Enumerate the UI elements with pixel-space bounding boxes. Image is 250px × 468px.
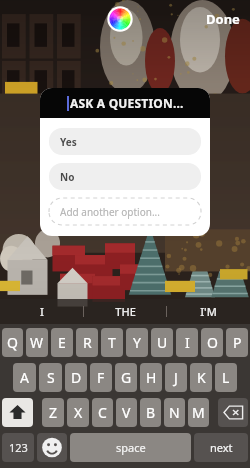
staticText: B — [146, 403, 156, 422]
staticText: V — [122, 403, 131, 422]
staticText: U — [157, 333, 168, 352]
staticText: O — [207, 333, 218, 352]
button[interactable]: Emoji — [37, 433, 67, 462]
staticText: M — [192, 403, 205, 422]
button[interactable]: R — [76, 328, 98, 357]
staticText: Yes — [60, 135, 77, 149]
staticText: No — [60, 170, 75, 184]
staticText: E — [58, 333, 66, 352]
staticText: I — [185, 333, 190, 352]
staticText: A — [20, 368, 29, 387]
button[interactable]: M — [188, 398, 209, 427]
staticText: next — [210, 440, 233, 455]
staticText: Z — [49, 403, 58, 422]
staticText: H — [146, 368, 157, 387]
staticText: THE — [115, 304, 136, 319]
staticText: P — [233, 333, 242, 352]
button[interactable]: THE — [84, 299, 167, 324]
staticText: J — [174, 368, 178, 387]
button[interactable]: P — [226, 328, 248, 357]
button[interactable]: F — [90, 363, 112, 392]
staticText: 123 — [9, 440, 28, 455]
staticText: I — [40, 304, 44, 319]
button[interactable]: Shift — [2, 398, 33, 427]
button[interactable]: 123 — [2, 433, 34, 462]
button[interactable]: No — [49, 163, 201, 190]
staticText: L — [222, 368, 230, 387]
button[interactable]: G — [115, 363, 137, 392]
button[interactable]: C — [92, 398, 113, 427]
button[interactable]: O — [201, 328, 223, 357]
staticText: T — [108, 333, 116, 352]
button[interactable]: V — [116, 398, 137, 427]
button[interactable]: X — [67, 398, 89, 427]
staticText: X — [74, 403, 83, 422]
button[interactable]: U — [151, 328, 173, 357]
button[interactable]: T — [101, 328, 123, 357]
staticText: C — [98, 403, 107, 422]
button[interactable]: I — [0, 299, 84, 324]
staticText: W — [30, 333, 44, 352]
button[interactable]: Z — [42, 398, 64, 427]
button[interactable]: N — [164, 398, 185, 427]
button[interactable]: Yes — [49, 128, 201, 155]
button[interactable]: ASK A QUESTION... — [40, 88, 210, 118]
button[interactable]: A — [13, 363, 36, 392]
staticText: R — [83, 333, 92, 352]
staticText: Add another option... — [60, 205, 160, 219]
staticText: space — [116, 440, 146, 455]
button[interactable]: E — [51, 328, 73, 357]
button[interactable]: Done — [196, 6, 250, 32]
staticText: Q — [7, 333, 18, 352]
staticText: G — [121, 368, 132, 387]
button[interactable]: Backspace — [218, 398, 248, 427]
button[interactable]: Q — [2, 328, 23, 357]
button[interactable]: J — [165, 363, 187, 392]
staticText: F — [97, 368, 105, 387]
staticText: Done — [206, 10, 240, 28]
button[interactable]: Color picker — [107, 6, 133, 32]
staticText: K — [197, 368, 206, 387]
staticText: Y — [133, 333, 141, 352]
button[interactable]: B — [140, 398, 161, 427]
button[interactable]: H — [140, 363, 162, 392]
button[interactable]: space — [70, 433, 191, 462]
staticText: D — [71, 368, 82, 387]
button[interactable]: I'M — [167, 299, 250, 324]
button[interactable]: Y — [126, 328, 148, 357]
button[interactable]: K — [190, 363, 212, 392]
button[interactable]: S — [39, 363, 62, 392]
staticText: N — [169, 403, 180, 422]
staticText: ASK A QUESTION... — [70, 95, 184, 111]
button[interactable]: W — [26, 328, 48, 357]
button[interactable]: next — [194, 433, 248, 462]
button[interactable]: Add another option... — [49, 198, 201, 225]
button[interactable]: I — [176, 328, 198, 357]
staticText: S — [47, 368, 55, 387]
staticText: I'M — [200, 304, 217, 319]
button[interactable]: D — [65, 363, 87, 392]
button[interactable]: L — [215, 363, 237, 392]
